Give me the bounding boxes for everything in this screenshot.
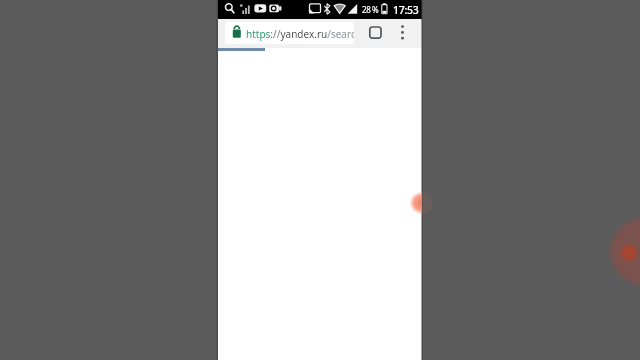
staticText: https://yandex.ru/search [246,27,354,41]
staticText: 17:53 [393,3,419,17]
staticText: 28 % [362,4,379,15]
